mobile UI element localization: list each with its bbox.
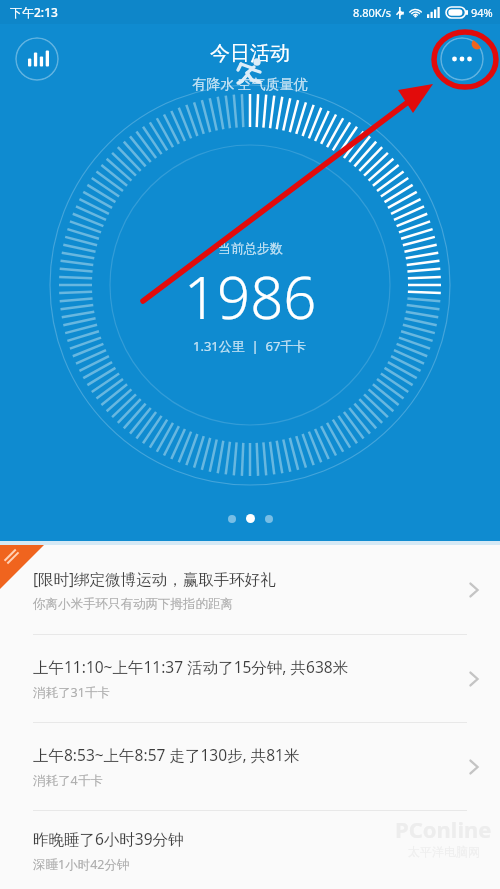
button[interactable]: More options (440, 37, 484, 81)
button[interactable]: 昨晚睡了6小时39分钟 (0, 811, 500, 889)
button[interactable]: [限时]绑定微博运动，赢取手环好礼 (0, 545, 500, 634)
button[interactable]: 上午8:53~上午8:57 走了130步, 共81米 (0, 723, 500, 810)
button[interactable]: Statistics (15, 37, 59, 81)
staticText: 1986 (184, 257, 317, 336)
staticText: 有降水 空气质量优 (192, 74, 308, 93)
staticText: 1.31公里 | 67千卡 (193, 337, 307, 355)
staticText: 深睡1小时42分钟 (33, 856, 130, 873)
staticText: 你离小米手环只有动两下拇指的距离 (33, 596, 233, 612)
staticText: [限时]绑定微博运动，赢取手环好礼 (33, 568, 276, 589)
staticText: 当前总步数 (218, 240, 283, 256)
staticText: 今日活动 (210, 41, 290, 66)
staticText: 上午8:53~上午8:57 走了130步, 共81米 (33, 744, 300, 765)
staticText: PConline (395, 814, 492, 844)
staticText: 8.80K/s (353, 5, 391, 20)
staticText: 消耗了4千卡 (33, 772, 103, 789)
staticText: 上午11:10~上午11:37 活动了15分钟, 共638米 (33, 656, 349, 677)
staticText: 太平洋电脑网 (408, 844, 480, 859)
staticText: 消耗了31千卡 (33, 684, 110, 701)
staticText: 昨晚睡了6小时39分钟 (33, 828, 184, 849)
staticText: 94% (471, 5, 493, 20)
button[interactable]: 上午11:10~上午11:37 活动了15分钟, 共638米 (0, 635, 500, 722)
staticText: 下午2:13 (10, 4, 58, 20)
